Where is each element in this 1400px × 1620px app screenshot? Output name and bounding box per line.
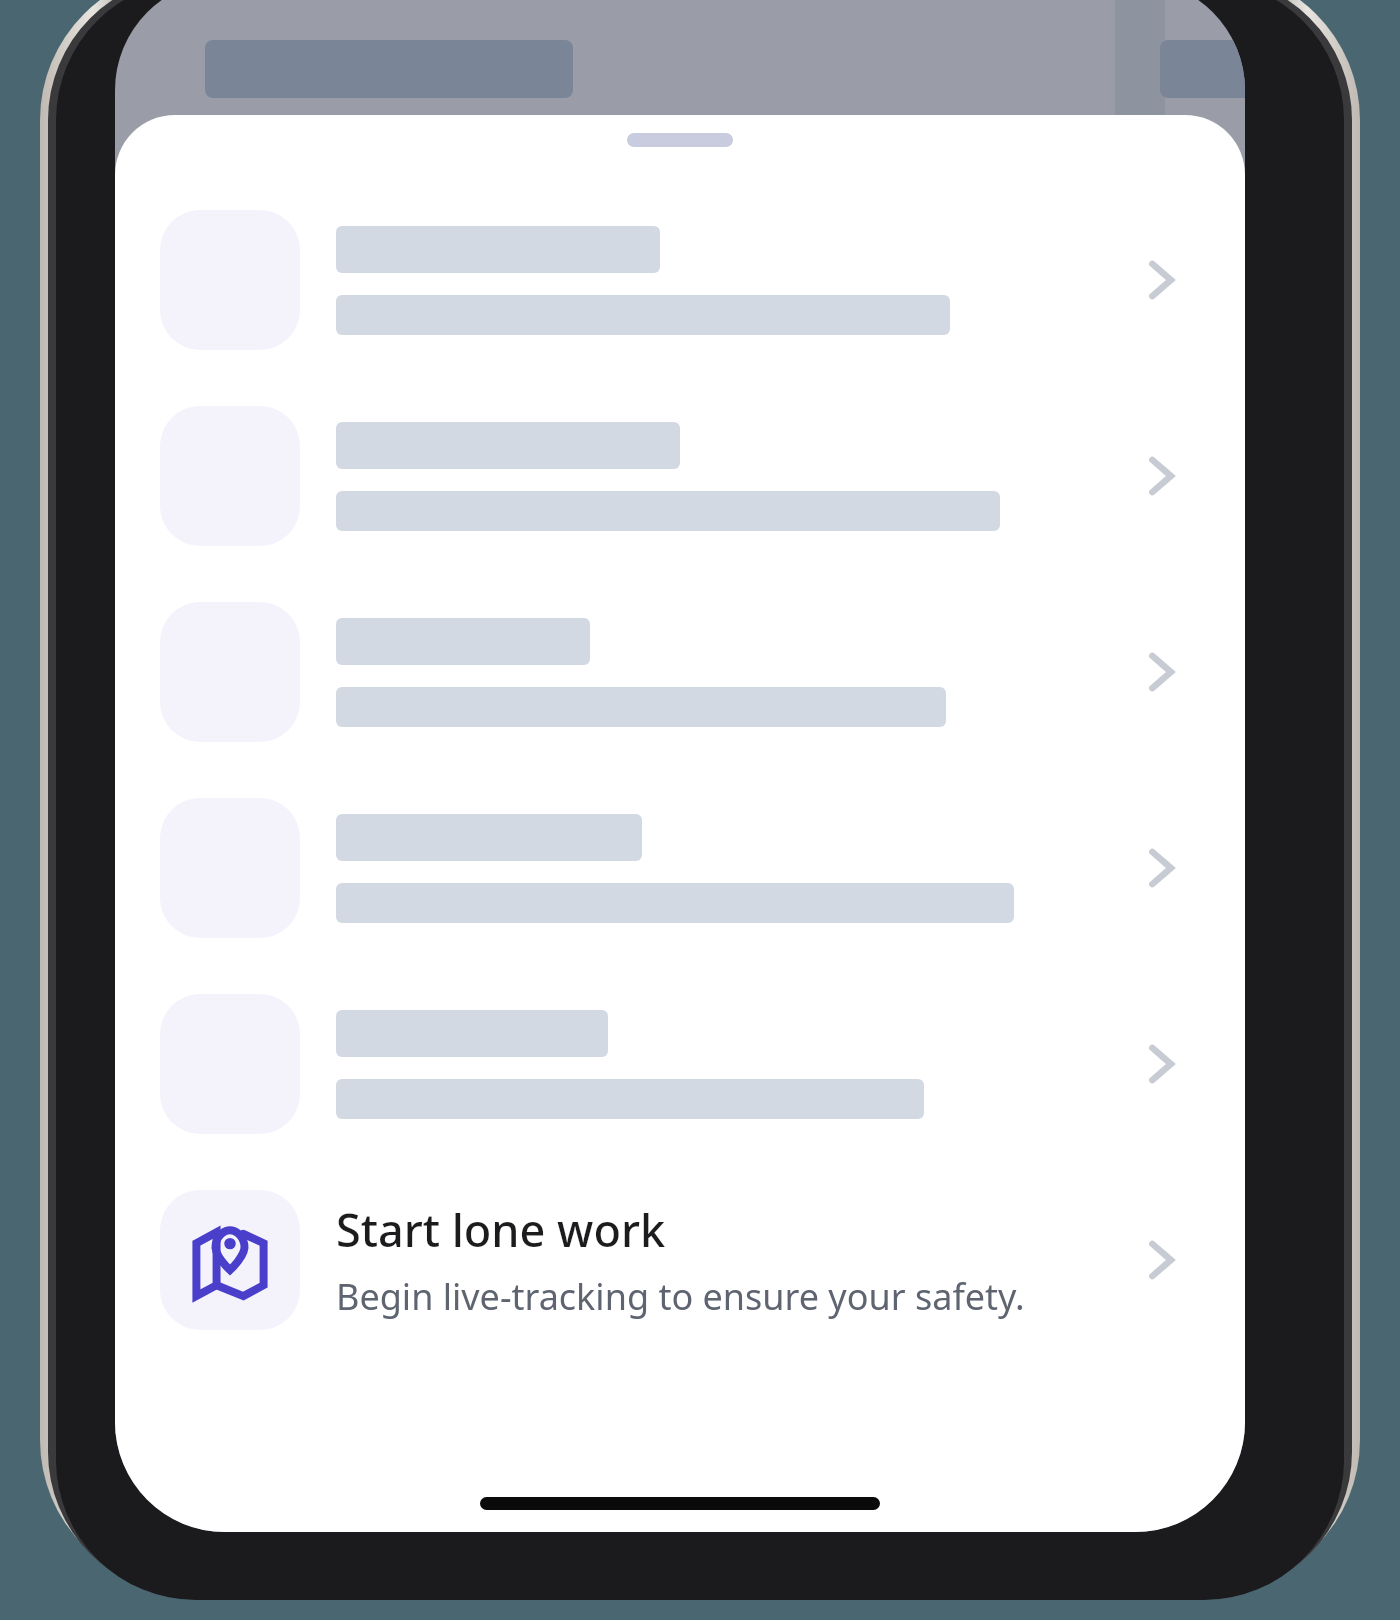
staticText: Start lone work bbox=[336, 1199, 666, 1260]
other: Open bbox=[1130, 1033, 1192, 1095]
other: Open bbox=[1130, 641, 1192, 703]
button[interactable]: Open bbox=[115, 994, 1245, 1134]
other: Open bbox=[1130, 445, 1192, 507]
button[interactable]: Open bbox=[115, 798, 1245, 938]
button[interactable]: Start lone work bbox=[115, 1190, 1245, 1330]
button[interactable]: Open bbox=[115, 210, 1245, 350]
staticText: Begin live-tracking to ensure your safet… bbox=[336, 1272, 1025, 1321]
button[interactable]: Open bbox=[115, 406, 1245, 546]
other: Open bbox=[1130, 1229, 1192, 1291]
button[interactable]: Open bbox=[115, 602, 1245, 742]
other: Open bbox=[1130, 837, 1192, 899]
other: Open bbox=[1130, 249, 1192, 311]
